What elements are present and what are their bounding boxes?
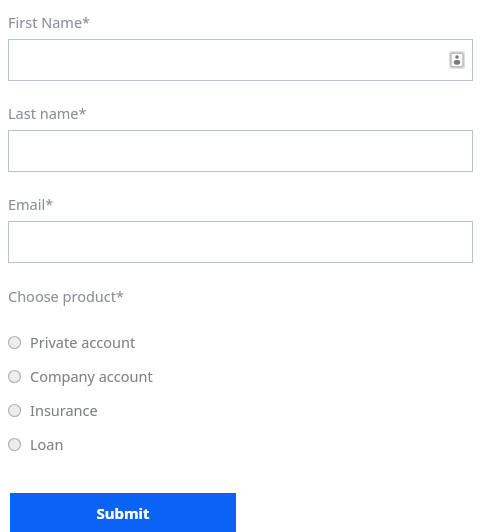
button[interactable]: Loan [8,427,473,461]
staticText: Last name* [8,103,87,123]
staticText: Choose product* [8,286,125,306]
button[interactable]: Insurance [8,393,473,427]
staticText: First Name* [8,12,91,32]
button[interactable] [8,130,473,172]
staticText: Loan [30,434,64,454]
button[interactable]: Submit [10,493,236,532]
button[interactable]: Private account [8,325,473,359]
button[interactable]: Autofill contact [448,51,466,69]
button[interactable]: Company account [8,359,473,393]
staticText: Company account [30,366,153,386]
staticText: Email* [8,194,54,214]
button[interactable]: Autofill contact [8,39,473,81]
staticText: Submit [96,503,150,523]
staticText: Insurance [30,400,98,420]
staticText: Private account [30,332,136,352]
button[interactable] [8,221,473,263]
